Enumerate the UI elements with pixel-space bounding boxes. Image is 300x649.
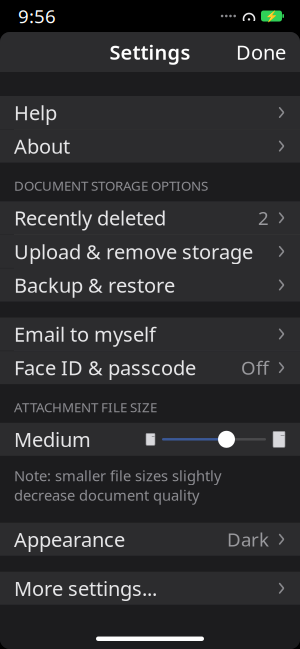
button[interactable]: Backup & restore [0,268,300,301]
staticText: Recently deleted [14,204,166,231]
button[interactable]: Email to myself [0,317,300,350]
staticText: More settings... [14,575,157,602]
staticText: 2 [258,205,269,230]
button[interactable]: Appearance [0,523,300,556]
staticText: Help [14,99,57,126]
staticText: 9:56 [18,4,56,28]
button[interactable]: Help [0,96,300,129]
staticText: Appearance [14,526,125,553]
staticText: Dark [227,527,269,552]
button[interactable]: Upload & remove storage [0,235,300,268]
staticText: About [14,133,70,159]
staticText: DOCUMENT STORAGE OPTIONS [14,177,208,194]
button[interactable]: Face ID & passcode [0,351,300,384]
staticText: Off [241,355,269,380]
button[interactable]: About [0,130,300,163]
staticText: Upload & remove storage [14,238,253,265]
staticText: Medium [14,426,91,453]
staticText: ⚡ [265,10,278,22]
staticText: Note: smaller file sizes slightly decrea… [14,466,221,505]
button[interactable]: Recently deleted [0,201,300,234]
staticText: Done [236,39,286,65]
staticText: Settings [109,39,190,65]
staticText: Face ID & passcode [14,354,196,381]
staticText: Email to myself [14,321,156,347]
staticText: Backup & restore [14,272,175,298]
button[interactable]: Done [222,31,300,73]
staticText: ATTACHMENT FILE SIZE [14,398,157,416]
button[interactable]: More settings... [0,572,300,605]
